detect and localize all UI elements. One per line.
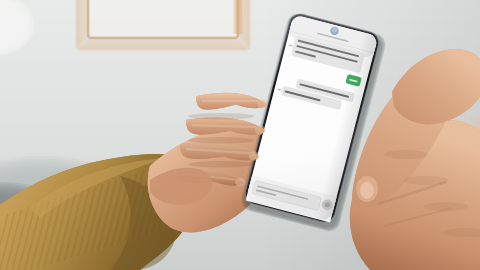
- other: Hands holding a phone showing a chat app: [0, 0, 480, 270]
- button[interactable]: Chat conversation: [0, 0, 480, 270]
